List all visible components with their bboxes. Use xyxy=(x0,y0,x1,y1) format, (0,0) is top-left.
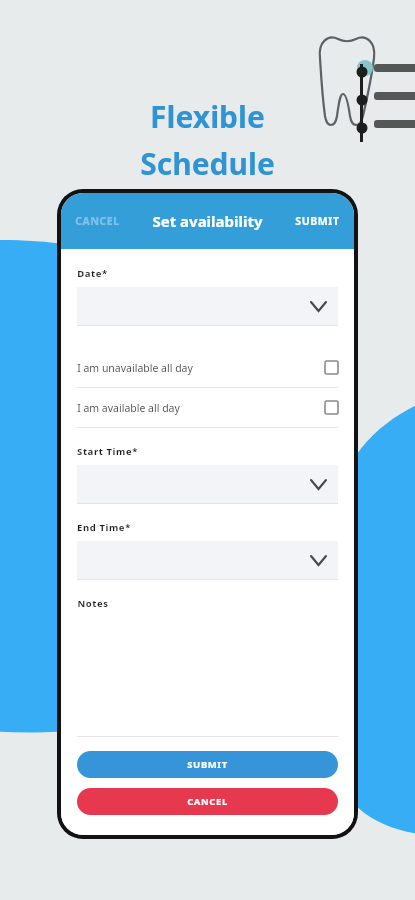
staticText: Date* xyxy=(77,267,108,280)
staticText: CANCEL xyxy=(75,214,120,228)
button[interactable]: CANCEL xyxy=(77,788,338,815)
staticText: Flexible xyxy=(150,96,265,137)
staticText: I am available all day xyxy=(77,401,180,415)
button[interactable]: I am unavailable all day xyxy=(77,348,338,388)
staticText: Start Time* xyxy=(77,445,138,458)
button[interactable]: SUBMIT xyxy=(281,206,354,236)
other: Open picker xyxy=(311,302,326,311)
staticText: CANCEL xyxy=(187,795,228,808)
button[interactable]: CANCEL xyxy=(61,206,134,236)
staticText: Set availability xyxy=(152,211,263,231)
button[interactable]: Open picker xyxy=(77,465,338,504)
staticText: Notes xyxy=(77,597,109,610)
button[interactable]: I am available all day xyxy=(77,388,338,428)
other: Stalling Dental Professionals logo xyxy=(310,28,396,76)
staticText: SUBMIT xyxy=(295,214,340,228)
other: Open picker xyxy=(311,556,326,565)
button[interactable]: Open picker xyxy=(77,541,338,580)
button[interactable]: SUBMIT xyxy=(77,751,338,778)
staticText: End Time* xyxy=(77,521,131,534)
other: Open picker xyxy=(311,480,326,489)
staticText: Schedule xyxy=(140,143,275,184)
staticText: I am unavailable all day xyxy=(77,361,193,375)
button[interactable]: Open picker xyxy=(77,287,338,326)
staticText: SUBMIT xyxy=(187,758,228,771)
